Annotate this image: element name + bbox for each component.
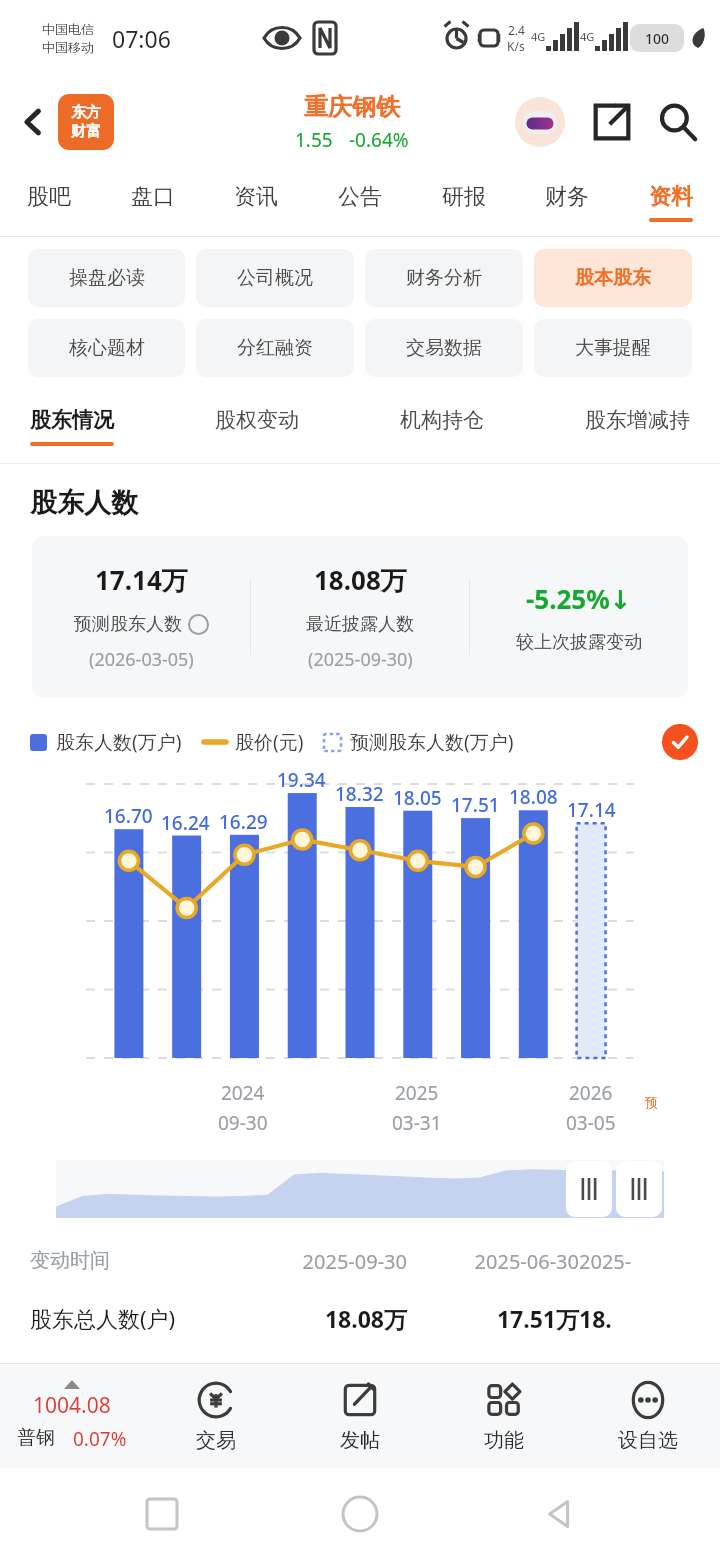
staticText: 公告 <box>338 183 382 211</box>
staticText: 18. <box>579 1303 612 1334</box>
staticText: 18.32 <box>335 781 384 807</box>
staticText: 07:06 <box>112 23 171 54</box>
staticText: 财富 <box>71 122 101 141</box>
button[interactable]: Share <box>586 96 638 148</box>
staticText: 2025 <box>395 1080 439 1106</box>
button[interactable]: Recents <box>126 1478 198 1550</box>
button[interactable]: 功能 <box>432 1379 576 1453</box>
staticText: 2026 <box>569 1080 613 1106</box>
button[interactable]: Search <box>652 96 704 148</box>
staticText: 18.08万 <box>235 1303 407 1334</box>
button[interactable]: 资料 <box>642 168 700 236</box>
staticText: 股东情况 <box>30 407 114 433</box>
staticText: 2024 <box>221 1080 265 1106</box>
staticText: 公司概况 <box>237 266 313 290</box>
staticText: 1.55 <box>295 127 333 153</box>
button[interactable]: Back <box>522 1478 594 1550</box>
staticText: 17.14万 <box>95 562 188 598</box>
staticText: 0.07% <box>73 1426 127 1452</box>
staticText: 股东总人数(户) <box>30 1303 235 1333</box>
staticText: 4G <box>531 29 546 44</box>
staticText: 16.29 <box>219 809 268 835</box>
button[interactable]: 财务 <box>538 168 596 236</box>
button[interactable]: Back <box>6 95 60 149</box>
button[interactable]: 股东情况 <box>30 389 114 463</box>
staticText: 财务分析 <box>406 266 482 290</box>
staticText: 2025-09-30 <box>235 1248 407 1275</box>
button[interactable]: 财务分析 <box>365 249 523 307</box>
staticText: 09-30 <box>218 1110 268 1136</box>
button[interactable]: AI assistant <box>512 94 568 150</box>
button[interactable]: Range handle <box>566 1161 612 1217</box>
staticText: (2026-03-05) <box>89 647 194 672</box>
staticText: 19.34 <box>277 767 326 793</box>
staticText: 功能 <box>484 1428 524 1453</box>
staticText: (2025-09-30) <box>308 647 413 672</box>
button[interactable]: 公告 <box>331 168 389 236</box>
staticText: 预测股东人数(万户) <box>350 729 514 755</box>
staticText: 资讯 <box>234 183 278 211</box>
staticText: 较上次披露变动 <box>516 631 642 654</box>
button[interactable]: 研报 <box>435 168 493 236</box>
staticText: 股东人数(万户) <box>56 729 182 755</box>
staticText: -0.64% <box>349 127 409 153</box>
staticText: 盘口 <box>131 183 175 211</box>
staticText: 操盘必读 <box>69 266 145 290</box>
button[interactable]: 核心题材 <box>28 319 185 377</box>
button[interactable]: 股本股东 <box>534 249 692 307</box>
staticText: 03-05 <box>566 1110 616 1136</box>
button[interactable]: 股吧 <box>20 168 78 236</box>
button[interactable]: 机构持仓 <box>400 389 484 463</box>
button[interactable]: Range handle <box>616 1161 662 1217</box>
staticText: 预测股东人数 <box>74 613 182 636</box>
button[interactable]: Confirm <box>662 724 698 760</box>
staticText: 1004.08 <box>33 1391 111 1420</box>
staticText: 2.4 <box>508 22 525 38</box>
button[interactable]: 设自选 <box>576 1379 720 1453</box>
button[interactable]: 交易 <box>144 1379 288 1453</box>
button[interactable]: 大事提醒 <box>534 319 692 377</box>
staticText: 中国电信 <box>42 21 94 37</box>
staticText: 重庆钢铁 <box>304 92 400 122</box>
staticText: 股本股东 <box>575 266 651 290</box>
staticText: 东方 <box>71 103 101 122</box>
button[interactable]: Home <box>324 1478 396 1550</box>
staticText: 17.51 <box>451 792 500 818</box>
staticText: 最近披露人数 <box>306 613 414 636</box>
button[interactable]: 分红融资 <box>196 319 354 377</box>
button[interactable]: 资讯 <box>227 168 285 236</box>
staticText: 股价(元) <box>235 729 304 755</box>
staticText: 2025- <box>579 1248 632 1275</box>
button[interactable]: 盘口 <box>124 168 182 236</box>
staticText: 18.08 <box>509 784 558 810</box>
staticText: 4G <box>580 29 595 44</box>
staticText: 设自选 <box>618 1428 678 1453</box>
staticText: 普钢 <box>17 1426 55 1450</box>
staticText: 股东人数 <box>30 486 138 520</box>
button[interactable]: 股权变动 <box>215 389 299 463</box>
button[interactable]: 发帖 <box>288 1379 432 1453</box>
staticText: 分红融资 <box>237 336 313 360</box>
button[interactable]: 东方 <box>58 94 114 150</box>
button[interactable]: 1004.08 <box>0 1380 144 1452</box>
staticText: -5.25%↓ <box>526 581 632 616</box>
staticText: 交易数据 <box>406 336 482 360</box>
button[interactable]: 股东增减持 <box>585 389 690 463</box>
staticText: 预 <box>645 1094 658 1110</box>
staticText: 16.70 <box>104 803 153 829</box>
staticText: 发帖 <box>340 1428 380 1453</box>
staticText: 16.24 <box>161 810 210 836</box>
button[interactable]: 交易数据 <box>365 319 523 377</box>
staticText: 核心题材 <box>69 336 145 360</box>
button[interactable]: 操盘必读 <box>28 249 185 307</box>
button[interactable]: 公司概况 <box>196 249 354 307</box>
